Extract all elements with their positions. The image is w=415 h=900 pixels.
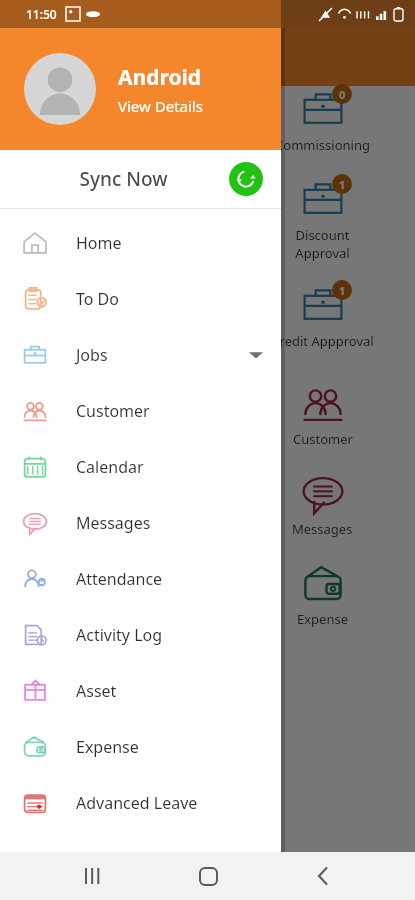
- staticText: Activity Log: [76, 624, 163, 646]
- staticText: 1: [339, 177, 346, 192]
- other: Sync: [229, 162, 263, 196]
- staticText: Discount Approval: [295, 226, 350, 262]
- button[interactable]: Home: [0, 215, 281, 271]
- button[interactable]: Messages: [0, 495, 281, 551]
- button[interactable]: Home: [184, 852, 232, 900]
- button[interactable]: Sync Now: [0, 150, 281, 208]
- button[interactable]: Advanced Leave: [0, 775, 281, 831]
- staticText: Messages: [292, 520, 353, 538]
- button[interactable]: 0: [0, 86, 415, 176]
- staticText: Calendar: [76, 456, 144, 478]
- staticText: Attendance: [76, 568, 163, 590]
- staticText: Customer: [76, 400, 150, 422]
- button[interactable]: Calendar: [0, 439, 281, 495]
- staticText: Android: [118, 63, 202, 92]
- button[interactable]: Customer: [0, 382, 415, 472]
- button[interactable]: Android: [0, 28, 281, 150]
- staticText: Expense: [76, 736, 139, 758]
- staticText: Messages: [76, 512, 151, 534]
- staticText: Jobs: [76, 344, 108, 366]
- button[interactable]: Expense: [0, 719, 281, 775]
- button[interactable]: 1: [0, 282, 415, 372]
- staticText: Home: [76, 232, 122, 254]
- button[interactable]: Activity Log: [0, 607, 281, 663]
- button[interactable]: Expense: [0, 562, 415, 652]
- staticText: Sync Now: [18, 166, 229, 192]
- staticText: Commissioning: [275, 136, 370, 154]
- staticText: Advanced Leave: [76, 792, 198, 814]
- button[interactable]: Asset: [0, 663, 281, 719]
- button[interactable]: Messages: [0, 472, 415, 562]
- staticText: 0: [339, 87, 346, 102]
- staticText: Customer: [293, 430, 353, 448]
- staticText: View Details: [118, 96, 203, 116]
- staticText: To Do: [76, 288, 119, 310]
- button[interactable]: To Do: [0, 271, 281, 327]
- button[interactable]: Back: [299, 852, 347, 900]
- staticText: 1: [339, 283, 346, 298]
- button[interactable]: Customer: [0, 383, 281, 439]
- button[interactable]: Recents: [68, 852, 116, 900]
- staticText: Asset: [76, 680, 117, 702]
- staticText: Expense: [297, 610, 349, 628]
- staticText: Credit Appproval: [271, 332, 374, 350]
- button[interactable]: Attendance: [0, 551, 281, 607]
- button[interactable]: 1: [0, 176, 415, 282]
- button[interactable]: Jobs: [0, 327, 281, 383]
- staticText: 11:50: [26, 6, 57, 22]
